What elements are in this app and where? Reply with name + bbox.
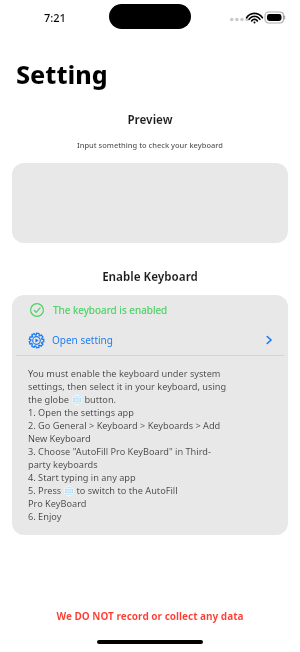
staticText: You must enable the keyboard under syste… xyxy=(28,367,221,380)
staticText: settings, then select it in your keyboar… xyxy=(28,380,227,393)
staticText: 6. Enjoy xyxy=(28,510,62,523)
button[interactable]: Open setting xyxy=(12,325,288,355)
staticText: 4. Start typing in any app xyxy=(28,471,136,484)
staticText: Preview xyxy=(0,112,300,128)
staticText: Pro KeyBoard xyxy=(28,497,87,510)
staticText: to switch to the AutoFill xyxy=(74,484,178,497)
staticText: 5. Press xyxy=(28,484,64,497)
staticText: 3. Choose "AutoFill Pro KeyBoard" in Thi… xyxy=(28,445,211,458)
staticText: New Keyboard xyxy=(28,432,91,445)
staticText: party keyboards xyxy=(28,458,98,471)
staticText: 1. Open the settings app xyxy=(28,406,134,419)
staticText: Input something to check your keyboard xyxy=(0,140,300,150)
staticText: Enable Keyboard xyxy=(0,269,300,285)
button[interactable]: The keyboard is enabled xyxy=(12,295,288,325)
staticText: 7:21 xyxy=(44,10,66,25)
staticText: We DO NOT record or collect any data xyxy=(0,609,300,623)
staticText: Setting xyxy=(16,57,108,91)
staticText: The keyboard is enabled xyxy=(53,303,168,317)
staticText: button. xyxy=(82,393,117,406)
staticText: the globe xyxy=(28,393,72,406)
staticText: 2. Go General > Keyboard > Keyboards > A… xyxy=(28,419,221,432)
staticText: Open setting xyxy=(52,333,264,347)
other: Open settings xyxy=(264,335,274,345)
